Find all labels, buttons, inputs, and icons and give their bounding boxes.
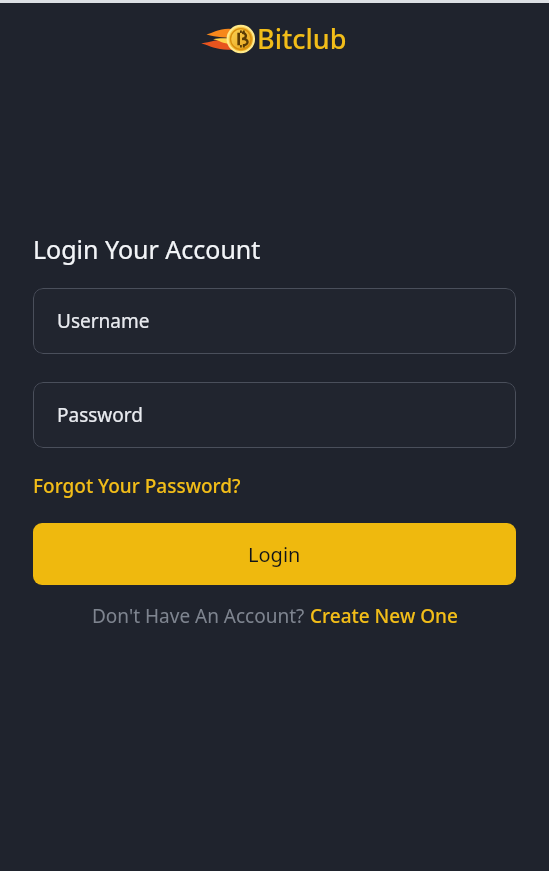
- button[interactable]: Forgot Your Password?: [33, 471, 241, 501]
- staticText: Create New One: [310, 603, 458, 629]
- other: Bitclub logo: [203, 24, 255, 54]
- button[interactable]: Login: [33, 523, 516, 585]
- staticText: Bitclub: [257, 20, 347, 57]
- staticText: Login: [248, 541, 301, 568]
- staticText: Forgot Your Password?: [33, 473, 241, 499]
- staticText: Don't Have An Account?: [92, 603, 310, 629]
- staticText: Login Your Account: [33, 232, 261, 266]
- button[interactable]: Create New One: [310, 603, 458, 629]
- button[interactable]: Username: [33, 288, 516, 354]
- button[interactable]: Password: [33, 382, 516, 448]
- staticText: Username: [57, 308, 150, 334]
- staticText: Password: [57, 402, 143, 428]
